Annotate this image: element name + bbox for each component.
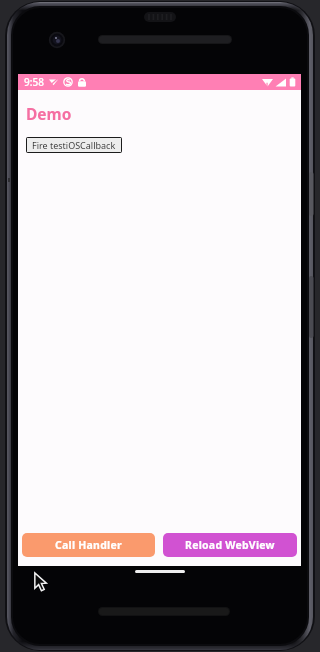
button[interactable]: Fire testiOSCallback	[26, 137, 122, 153]
button[interactable]: Call Handler	[22, 533, 155, 557]
staticText: Fire testiOSCallback	[32, 139, 116, 151]
button[interactable]: Reload WebView	[163, 533, 297, 557]
staticText: Call Handler	[55, 538, 122, 552]
staticText: Reload WebView	[185, 538, 275, 552]
staticText: 9:58	[24, 75, 44, 89]
staticText: Demo	[26, 103, 72, 124]
